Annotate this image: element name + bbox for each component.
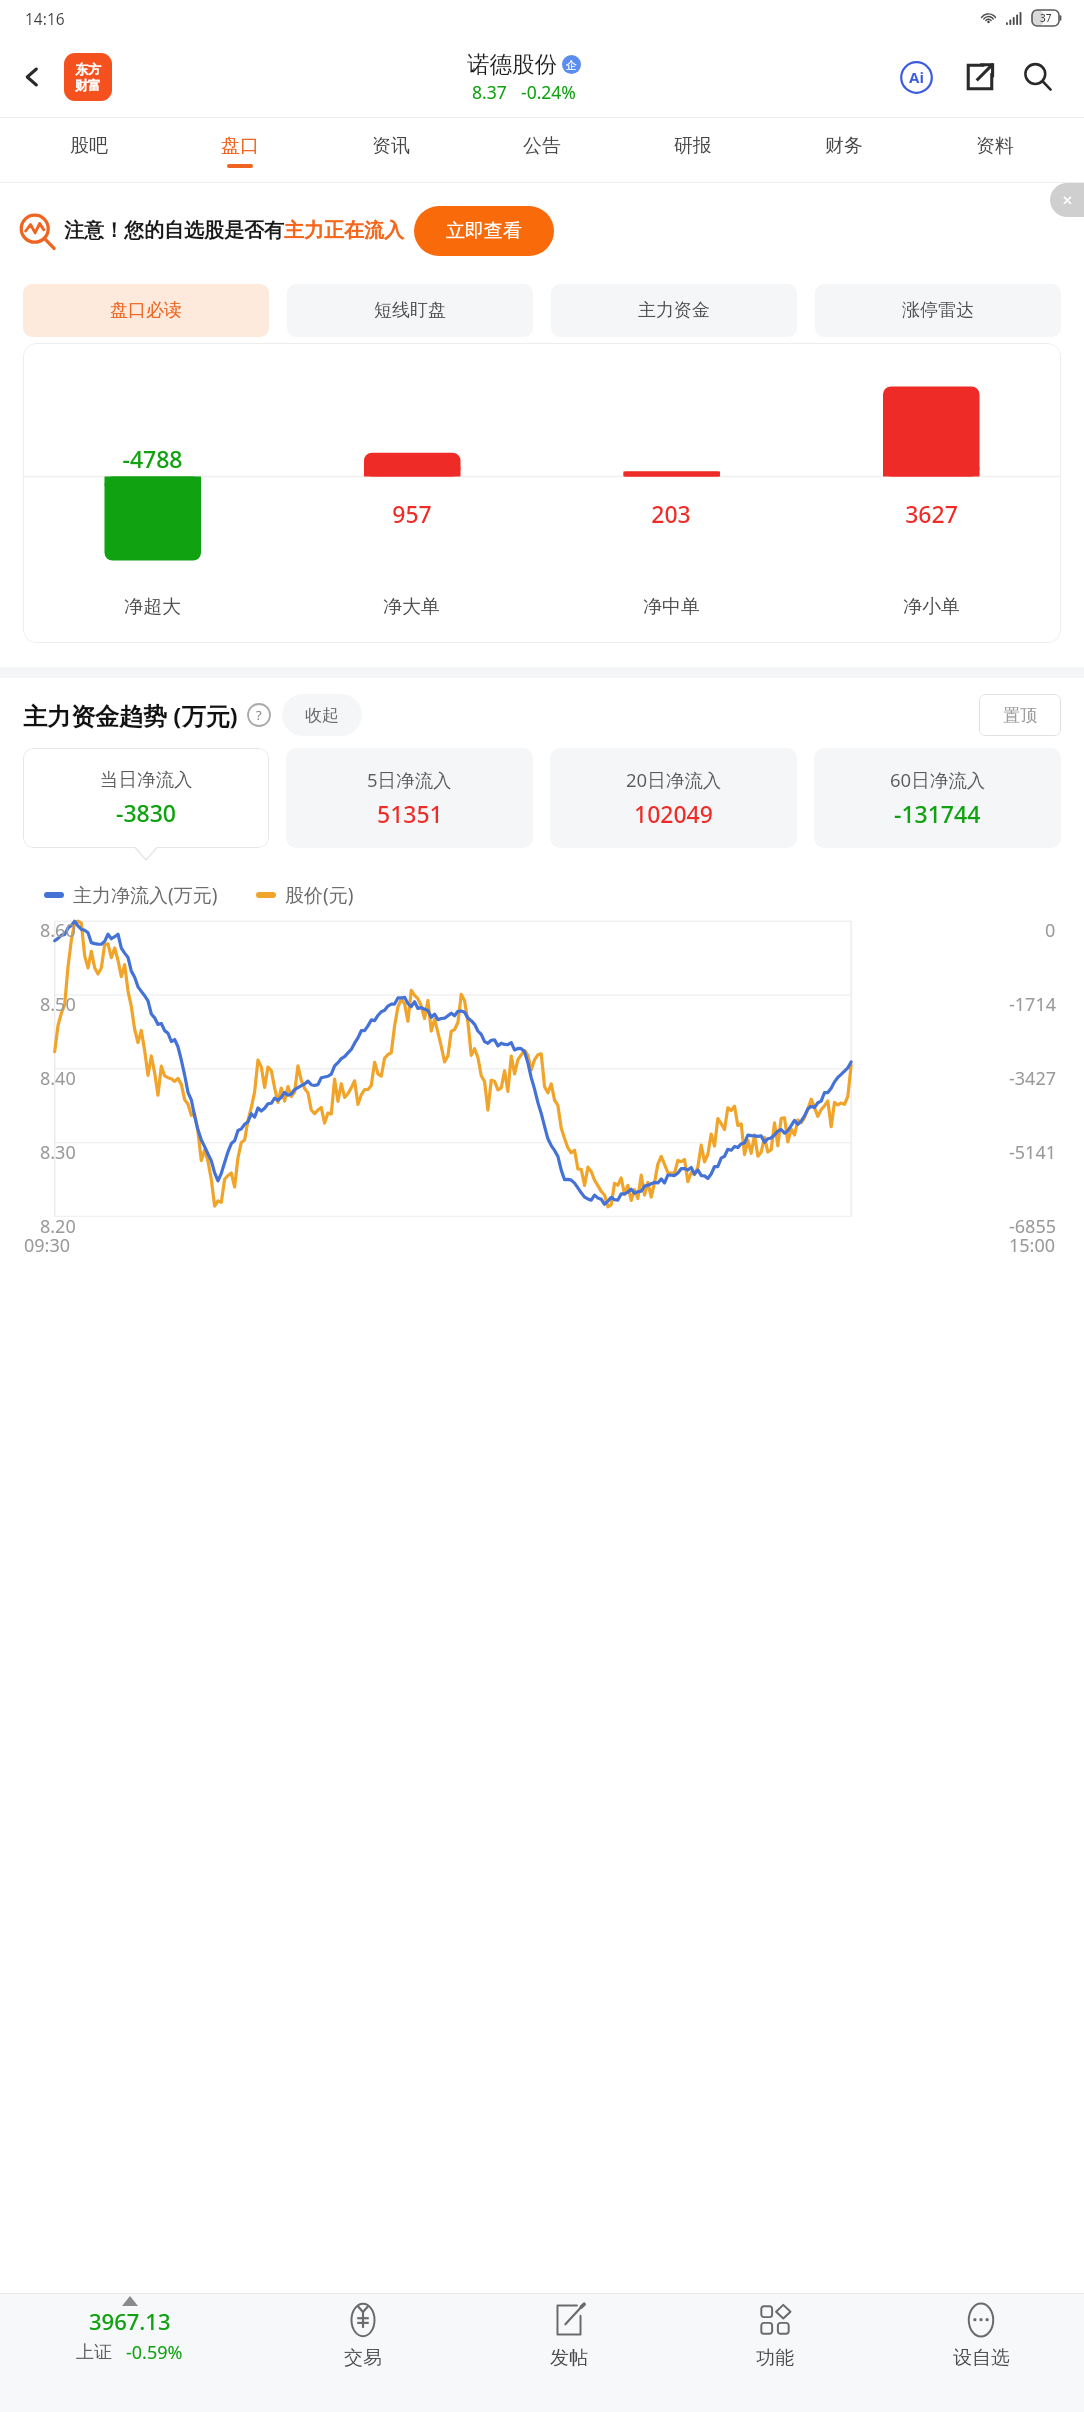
staticText: 净大单 — [383, 595, 440, 619]
staticText: ? — [256, 706, 262, 724]
staticText: 8.37 — [472, 80, 507, 104]
staticText: 置顶 — [1003, 705, 1037, 726]
staticText: 主力资金 — [638, 299, 710, 322]
staticText: -1714 — [1009, 992, 1056, 1017]
button[interactable]: Back — [8, 53, 56, 101]
staticText: -6855 — [1009, 1214, 1056, 1239]
staticText: 东方 — [75, 61, 101, 77]
staticText: 8.50 — [40, 992, 76, 1017]
staticText: 盘口必读 — [110, 299, 182, 322]
staticText: 资料 — [976, 134, 1014, 158]
staticText: 8.60 — [40, 918, 76, 943]
staticText: 15:00 — [1009, 1233, 1056, 1258]
button[interactable]: 置顶 — [979, 694, 1061, 736]
staticText: 0 — [1045, 918, 1056, 943]
button[interactable]: AI assistant — [890, 51, 942, 103]
staticText: 研报 — [674, 134, 712, 158]
button[interactable]: 短线盯盘 — [287, 284, 533, 337]
staticText: -131744 — [894, 798, 981, 829]
button[interactable]: -4788 — [23, 343, 1061, 643]
staticText: -0.24% — [521, 80, 576, 104]
staticText: 主力净流入(万元) — [73, 882, 218, 908]
staticText: 盘口 — [221, 134, 259, 158]
staticText: 8.40 — [40, 1066, 76, 1091]
button[interactable]: 股吧 — [14, 118, 164, 183]
button[interactable]: Post — [466, 2294, 672, 2412]
staticText: 20日净流入 — [626, 767, 722, 792]
staticText: 37 — [1040, 11, 1052, 25]
staticText: 股吧 — [70, 134, 108, 158]
button[interactable]: Functions — [672, 2294, 878, 2412]
button[interactable]: Add to watchlist — [878, 2294, 1084, 2412]
staticText: 当日净流入 — [100, 768, 193, 791]
staticText: 涨停雷达 — [902, 299, 974, 322]
button[interactable]: 资料 — [919, 118, 1070, 183]
button[interactable]: 涨停雷达 — [815, 284, 1061, 337]
staticText: 诺德股份 — [467, 50, 557, 78]
staticText: 设自选 — [953, 2346, 1010, 2370]
staticText: -3427 — [1009, 1066, 1056, 1091]
staticText: 主力资金趋势 (万元) — [23, 699, 238, 732]
staticText: 短线盯盘 — [374, 299, 446, 322]
staticText: -4788 — [122, 443, 183, 474]
staticText: 主力正在流入 — [284, 218, 404, 243]
staticText: -5141 — [1009, 1140, 1056, 1165]
button[interactable]: 当日净流入 — [23, 748, 269, 848]
staticText: 注意！您的自选股是否有 — [64, 218, 284, 243]
button[interactable]: Help — [246, 702, 272, 728]
button[interactable]: 研报 — [617, 118, 768, 183]
button[interactable]: 60日净流入 — [814, 748, 1061, 848]
staticText: 资讯 — [372, 134, 410, 158]
staticText: 8.30 — [40, 1140, 76, 1165]
staticText: 财富 — [75, 77, 101, 93]
button[interactable]: 财务 — [768, 118, 919, 183]
button[interactable]: 20日净流入 — [550, 748, 797, 848]
staticText: 企 — [566, 58, 577, 72]
button[interactable]: Search — [1012, 51, 1064, 103]
staticText: 净中单 — [643, 595, 700, 619]
staticText: -3830 — [116, 797, 177, 828]
staticText: 发帖 — [550, 2346, 588, 2370]
button[interactable]: 3967.13 — [0, 2294, 259, 2412]
staticText: 财务 — [825, 134, 863, 158]
button[interactable]: 注意！您的自选股是否有 — [18, 183, 1070, 278]
staticText: 14:16 — [25, 8, 65, 29]
staticText: 收起 — [305, 705, 339, 726]
staticText: 净小单 — [903, 595, 960, 619]
staticText: 立即查看 — [446, 219, 522, 243]
staticText: 3627 — [905, 498, 958, 529]
staticText: 09:30 — [24, 1233, 71, 1258]
staticText: 功能 — [756, 2346, 794, 2370]
staticText: 股价(元) — [285, 882, 354, 908]
button[interactable]: 公告 — [466, 118, 617, 183]
staticText: ✕ — [1062, 193, 1073, 208]
button[interactable]: 收起 — [282, 694, 362, 736]
button[interactable]: 盘口 — [164, 118, 315, 183]
button[interactable]: 盘口必读 — [23, 284, 269, 337]
staticText: -0.59% — [126, 2340, 183, 2365]
button[interactable]: Share — [954, 51, 1006, 103]
staticText: 203 — [651, 498, 691, 529]
staticText: 5日净流入 — [367, 767, 452, 792]
button[interactable]: Trade — [259, 2294, 466, 2412]
button[interactable]: 资讯 — [315, 118, 466, 183]
staticText: 957 — [392, 498, 432, 529]
staticText: 交易 — [344, 2346, 382, 2370]
staticText: 51351 — [377, 798, 443, 829]
staticText: 8.20 — [40, 1214, 76, 1239]
button[interactable]: 主力资金 — [551, 284, 797, 337]
staticText: 3967.13 — [89, 2306, 171, 2336]
staticText: 公告 — [523, 134, 561, 158]
button[interactable]: Close banner — [1050, 183, 1084, 217]
button[interactable]: 5日净流入 — [286, 748, 533, 848]
button[interactable]: East Money logo — [64, 53, 112, 101]
staticText: 102049 — [634, 798, 713, 829]
staticText: 上证 — [76, 2341, 112, 2364]
staticText: 净超大 — [124, 595, 181, 619]
staticText: Ai — [909, 67, 924, 87]
staticText: 60日净流入 — [890, 767, 986, 792]
button[interactable]: 立即查看 — [414, 206, 554, 256]
